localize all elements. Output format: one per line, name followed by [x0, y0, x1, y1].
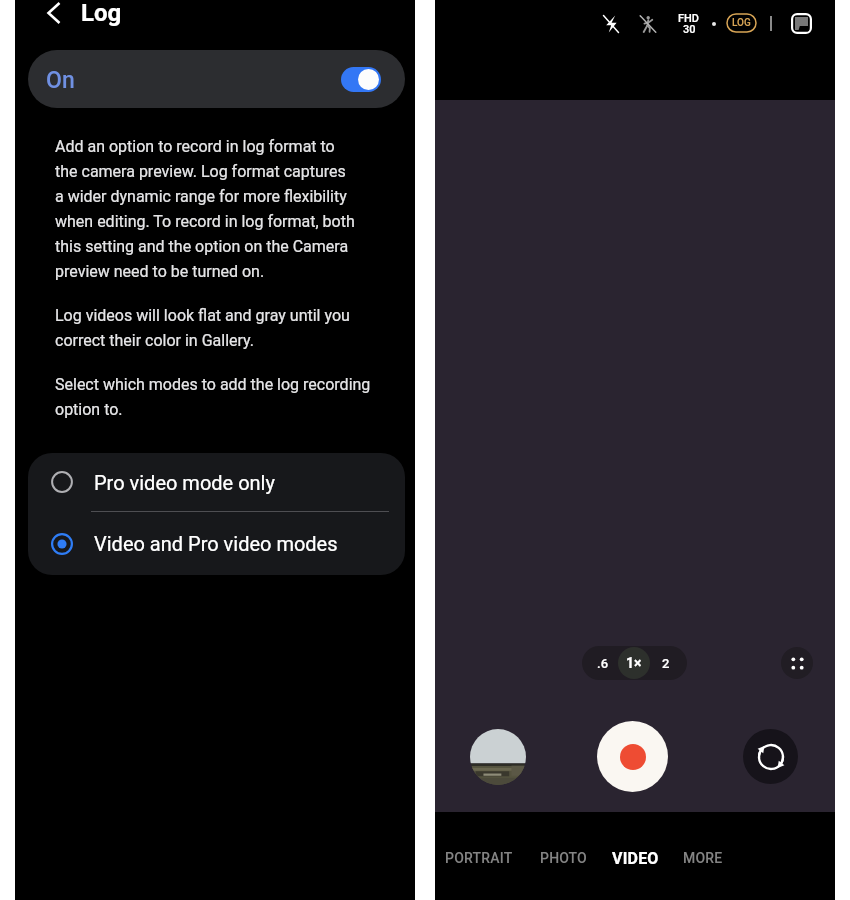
staticText: 30	[683, 23, 696, 36]
button[interactable]: Switch camera	[743, 729, 798, 784]
button[interactable]: VIDEO	[601, 838, 669, 878]
staticText: Pro video mode only	[94, 471, 275, 494]
button[interactable]: Back	[34, 0, 74, 33]
button[interactable]: PHOTO	[529, 838, 597, 878]
staticText: 2	[662, 656, 670, 671]
staticText: Log videos will look flat and gray until…	[55, 306, 350, 350]
staticText: Add an option to record in log format to…	[55, 137, 355, 281]
button[interactable]: Aspect ratio	[791, 13, 812, 34]
button[interactable]: Gallery	[470, 729, 526, 785]
button[interactable]: On	[28, 50, 405, 108]
staticText: PHOTO	[540, 850, 587, 866]
staticText: FHD	[678, 12, 700, 25]
staticText: LOG	[732, 17, 751, 29]
staticText: MORE	[683, 850, 723, 866]
button[interactable]: LOG	[727, 14, 756, 32]
staticText: .6	[597, 656, 609, 671]
staticText: Select which modes to add the log record…	[55, 375, 371, 419]
button[interactable]: Motion off	[632, 8, 664, 40]
button[interactable]: 1×	[618, 647, 650, 679]
button[interactable]: Flash off	[595, 8, 627, 40]
button[interactable]: Pro video mode only	[28, 453, 405, 511]
staticText: On	[46, 67, 75, 94]
staticText: VIDEO	[612, 849, 659, 868]
staticText: Video and Pro video modes	[94, 532, 338, 555]
button[interactable]: .6	[588, 646, 618, 680]
button[interactable]: 2	[651, 646, 681, 680]
staticText: Log	[81, 0, 122, 27]
button[interactable]: PORTRAIT	[445, 838, 513, 878]
button[interactable]: Video and Pro video modes	[28, 512, 405, 575]
button[interactable]: More options	[781, 647, 813, 679]
button[interactable]: Record	[597, 721, 668, 792]
staticText: 1×	[626, 655, 642, 671]
button[interactable]: MORE	[669, 838, 737, 878]
staticText: PORTRAIT	[445, 850, 513, 866]
